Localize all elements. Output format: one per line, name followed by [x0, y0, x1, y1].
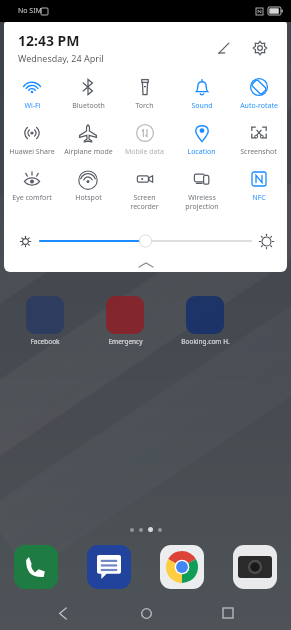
button[interactable]: Wi-Fi	[4, 72, 60, 116]
staticText: Airplane mode	[64, 147, 113, 157]
button[interactable]: Brightness	[40, 229, 251, 253]
staticText: 12:43 PM	[18, 31, 80, 50]
staticText: Booking.com H.	[181, 337, 230, 346]
staticText: Screen recorder	[130, 193, 159, 211]
button[interactable]: Mobile data	[116, 118, 173, 162]
button[interactable]: Collapse	[4, 258, 287, 272]
staticText: Wednesday, 24 April	[18, 52, 104, 64]
staticText: Emergency	[108, 337, 143, 346]
staticText: Huawei Share	[9, 147, 55, 157]
button[interactable]: NFC	[230, 164, 287, 208]
button[interactable]: Recent apps	[208, 596, 248, 630]
button[interactable]: Location	[173, 118, 230, 162]
button[interactable]: Edit	[209, 33, 239, 63]
button[interactable]: Screen recorder	[116, 164, 173, 216]
button[interactable]: Settings	[245, 33, 275, 63]
button[interactable]: Huawei Share	[4, 118, 60, 162]
staticText: No SIM	[18, 6, 42, 16]
staticText: Bluetooth	[72, 101, 105, 111]
button[interactable]: Sound	[173, 72, 230, 116]
staticText: Sound	[191, 101, 213, 111]
button[interactable]: Bluetooth	[60, 72, 116, 116]
button[interactable]: Airplane mode	[60, 118, 116, 162]
staticText: Screenshot	[240, 147, 277, 157]
staticText: Facebook	[30, 337, 60, 346]
button[interactable]: Back	[43, 596, 83, 630]
staticText: Eye comfort	[12, 193, 52, 203]
staticText: Location	[187, 147, 216, 157]
staticText: Auto-rotate	[240, 101, 278, 111]
button[interactable]: Eye comfort	[4, 164, 60, 208]
staticText: Mobile data	[125, 147, 164, 157]
button[interactable]: Auto-rotate	[230, 72, 287, 116]
staticText: Wireless projection	[185, 193, 219, 211]
staticText: NFC	[252, 193, 266, 203]
button[interactable]: Home	[126, 596, 166, 630]
button[interactable]: Screenshot	[230, 118, 287, 162]
staticText: Wi-Fi	[24, 101, 41, 111]
staticText: Torch	[135, 101, 154, 111]
button[interactable]: Torch	[116, 72, 173, 116]
button[interactable]: Wireless projection	[173, 164, 230, 216]
button[interactable]: Hotspot	[60, 164, 116, 208]
staticText: Hotspot	[75, 193, 102, 203]
